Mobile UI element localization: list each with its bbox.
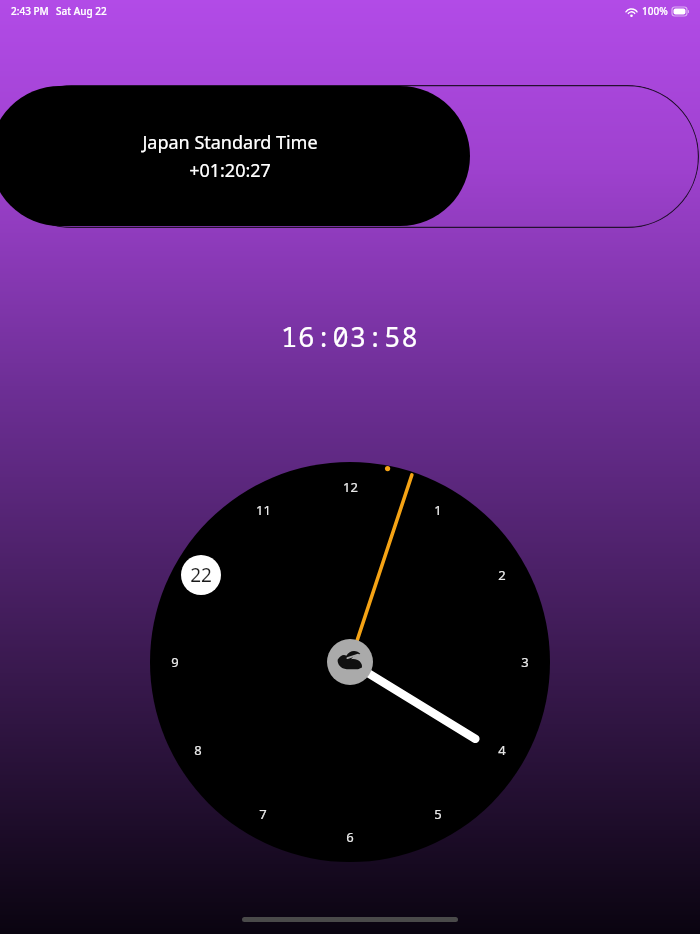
staticText: 10 — [191, 566, 206, 584]
button[interactable]: Japan Standard Time — [0, 86, 470, 226]
staticText: 16:03:58 — [281, 318, 419, 355]
staticText: 12 — [343, 478, 358, 496]
staticText: 1 — [434, 501, 442, 519]
staticText: 9 — [171, 653, 179, 671]
button[interactable] — [0, 85, 699, 228]
staticText: 100% — [642, 4, 668, 18]
button[interactable]: 22 — [181, 555, 221, 595]
staticText: 2 — [498, 566, 506, 584]
staticText: 2:43 PM — [11, 4, 49, 18]
staticText: 3 — [521, 653, 529, 671]
staticText: 6 — [346, 828, 354, 846]
staticText: 8 — [194, 741, 202, 759]
staticText: 11 — [256, 501, 271, 519]
button[interactable]: Analog clock face — [150, 462, 550, 862]
staticText: +01:20:27 — [189, 158, 271, 183]
staticText: 7 — [259, 805, 267, 823]
staticText: Sat Aug 22 — [56, 4, 107, 18]
staticText: 5 — [434, 805, 442, 823]
staticText: 4 — [498, 741, 506, 759]
staticText: 22 — [190, 562, 212, 588]
staticText: Japan Standard Time — [142, 130, 318, 155]
